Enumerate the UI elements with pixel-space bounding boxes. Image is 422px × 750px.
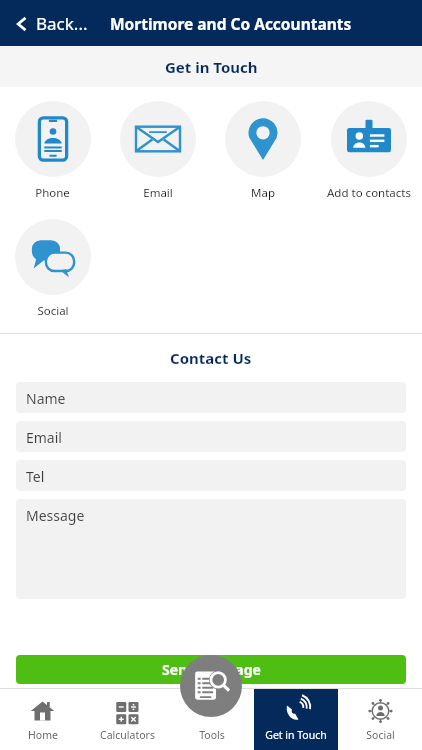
other: Add to contacts bbox=[347, 117, 391, 161]
staticText: Email bbox=[143, 185, 173, 201]
button[interactable]: Home bbox=[0, 689, 85, 750]
button[interactable]: Message bbox=[16, 499, 406, 599]
staticText: Tools bbox=[199, 728, 225, 742]
button[interactable]: Map bbox=[210, 99, 316, 203]
button[interactable]: Email bbox=[105, 99, 210, 203]
other: Social bbox=[31, 235, 75, 279]
staticText: Calculators bbox=[100, 728, 155, 742]
button[interactable]: Social bbox=[338, 689, 422, 750]
staticText: Message bbox=[26, 506, 85, 525]
button[interactable]: Phone bbox=[0, 99, 105, 203]
button[interactable]: Calculators bbox=[85, 689, 170, 750]
button[interactable]: Name bbox=[16, 382, 406, 413]
staticText: Name bbox=[26, 389, 66, 408]
staticText: Send Message bbox=[162, 660, 261, 679]
button[interactable]: Get in Touch bbox=[254, 689, 338, 750]
button[interactable]: Tools bbox=[180, 655, 242, 717]
staticText: Social bbox=[37, 303, 69, 319]
staticText: Get in Touch bbox=[165, 57, 258, 77]
staticText: Social bbox=[366, 728, 395, 742]
staticText: Phone bbox=[35, 185, 70, 201]
staticText: Add to contacts bbox=[327, 185, 411, 201]
staticText: Back... bbox=[36, 12, 88, 35]
button[interactable]: Social bbox=[0, 217, 105, 321]
other: Email bbox=[136, 117, 180, 161]
button[interactable]: Tools bbox=[170, 689, 254, 750]
button[interactable]: Email bbox=[16, 421, 406, 452]
button[interactable]: Add to contacts bbox=[316, 99, 422, 203]
staticText: Mortimore and Co Accountants bbox=[110, 13, 352, 34]
staticText: Get in Touch bbox=[265, 728, 327, 742]
button[interactable]: Back... bbox=[10, 8, 92, 39]
button[interactable]: Send Message bbox=[16, 655, 406, 684]
staticText: Email bbox=[26, 428, 62, 447]
staticText: Home bbox=[28, 728, 58, 742]
staticText: Contact Us bbox=[170, 348, 252, 368]
other: Phone bbox=[31, 117, 75, 161]
staticText: Tel bbox=[26, 467, 45, 486]
other: Map bbox=[241, 117, 285, 161]
button[interactable]: Tel bbox=[16, 460, 406, 491]
staticText: Map bbox=[251, 185, 275, 201]
